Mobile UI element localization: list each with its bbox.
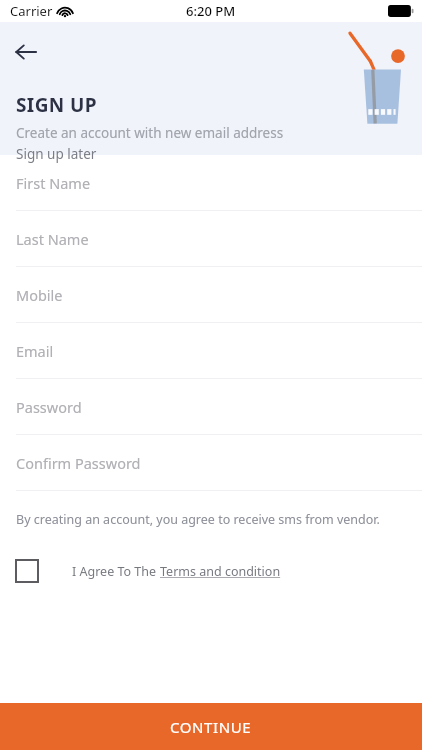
- staticText: Last Name: [16, 229, 89, 249]
- staticText: CONTINUE: [170, 717, 252, 737]
- button[interactable]: Agree to terms checkbox: [16, 560, 38, 582]
- button[interactable]: Password: [0, 379, 422, 435]
- staticText: Email: [16, 341, 54, 361]
- staticText: Create an account with new email address: [16, 124, 284, 142]
- button[interactable]: I Agree To The: [72, 563, 281, 580]
- staticText: Confirm Password: [16, 453, 141, 473]
- staticText: Carrier: [10, 2, 53, 20]
- button[interactable]: Last Name: [0, 211, 422, 267]
- button[interactable]: Sign up later: [16, 145, 97, 163]
- button[interactable]: First Name: [0, 155, 422, 211]
- button[interactable]: Mobile: [0, 267, 422, 323]
- staticText: Mobile: [16, 285, 63, 305]
- staticText: Sign up later: [16, 145, 97, 163]
- button[interactable]: CONTINUE: [0, 703, 422, 750]
- staticText: Password: [16, 397, 82, 417]
- staticText: First Name: [16, 173, 91, 193]
- staticText: Terms and condition: [160, 563, 281, 580]
- staticText: By creating an account, you agree to rec…: [16, 511, 380, 528]
- button[interactable]: Email: [0, 323, 422, 379]
- staticText: SIGN UP: [16, 92, 97, 118]
- button[interactable]: Confirm Password: [0, 435, 422, 491]
- staticText: I Agree To The: [72, 563, 160, 580]
- staticText: 6:20 PM: [186, 2, 236, 20]
- button[interactable]: Back: [6, 32, 46, 72]
